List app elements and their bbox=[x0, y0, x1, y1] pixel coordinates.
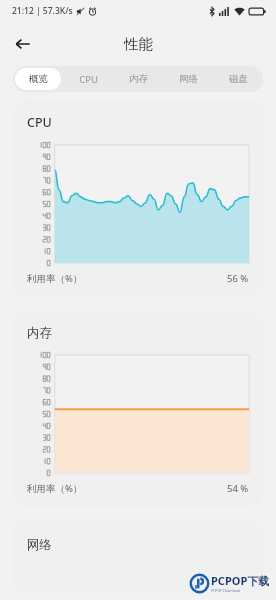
staticText: 利用率（%） bbox=[27, 482, 83, 495]
staticText: 性能 bbox=[124, 35, 153, 53]
staticText: 56 % bbox=[227, 272, 249, 285]
button[interactable]: CPU bbox=[65, 68, 111, 90]
button[interactable]: 内存 bbox=[13, 311, 263, 507]
button[interactable]: 网络 bbox=[13, 521, 263, 593]
staticText: CPU bbox=[79, 73, 98, 86]
button[interactable]: 内存 bbox=[115, 68, 161, 90]
staticText: 网络 bbox=[179, 73, 198, 85]
staticText: 21:12 | 57.3K/s bbox=[12, 5, 73, 17]
staticText: 54 % bbox=[227, 482, 249, 495]
button[interactable]: 网络 bbox=[165, 68, 211, 90]
button[interactable]: 概览 bbox=[15, 68, 61, 90]
staticText: 概览 bbox=[29, 73, 48, 85]
button[interactable]: CPU bbox=[13, 100, 263, 297]
staticText: 磁盘 bbox=[229, 73, 248, 85]
staticText: 利用率（%） bbox=[27, 272, 83, 285]
staticText: PCPOP下载 bbox=[211, 573, 270, 588]
button[interactable]: Back bbox=[7, 28, 39, 60]
staticText: 内存 bbox=[129, 73, 148, 85]
staticText: 内存 bbox=[27, 325, 52, 341]
staticText: 网络 bbox=[27, 537, 52, 553]
staticText: CPU bbox=[27, 114, 52, 131]
button[interactable]: 磁盘 bbox=[215, 68, 261, 90]
staticText: PCPOP Download bbox=[211, 588, 240, 593]
